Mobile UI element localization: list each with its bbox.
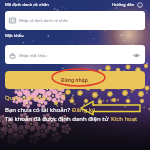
staticText: Mã định danh cá nhân: [5, 2, 49, 8]
button[interactable]: Mã định danh cá nhân: [5, 2, 49, 8]
button[interactable]: Nhập mật khẩu: [5, 45, 145, 64]
staticText: Nhập mật khẩu: [19, 53, 47, 58]
button[interactable]: Đăng ký: [72, 106, 95, 114]
button[interactable]: Show password: [129, 48, 143, 62]
staticText: Đăng nhập: [61, 77, 89, 84]
staticText: Quên mật khẩu: [5, 94, 49, 102]
button[interactable]: Nhập số định danh cá nhân: [5, 11, 145, 30]
staticText: Nhập số định danh cá nhân: [19, 18, 69, 23]
staticText: Kích hoạt: [111, 115, 138, 123]
staticText: Hướng dẫn: [112, 2, 135, 8]
staticText: Bạn chưa có tài khoản?: [5, 106, 72, 114]
button[interactable]: Quên mật khẩu: [5, 94, 49, 102]
staticText: Đăng ký: [72, 106, 95, 114]
button[interactable]: Hướng dẫn: [112, 2, 143, 8]
button[interactable]: Kích hoạt: [111, 115, 138, 123]
staticText: Mật khẩu: [5, 33, 24, 39]
button[interactable]: Đăng nhập: [5, 71, 145, 89]
staticText: Tài khoản đã được định danh điện tử: [5, 115, 111, 123]
